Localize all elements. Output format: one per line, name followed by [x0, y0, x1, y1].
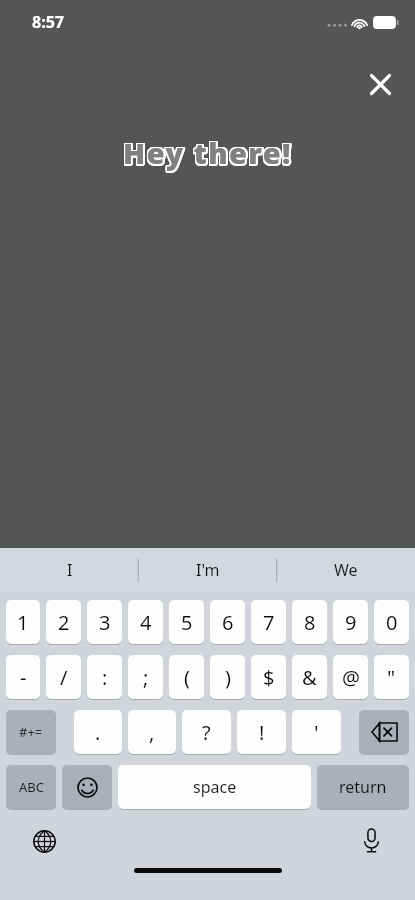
button[interactable]: Change keyboard: [26, 823, 62, 859]
button[interactable]: 0: [374, 600, 409, 644]
staticText: ): [225, 664, 231, 691]
button[interactable]: I'm: [139, 548, 277, 592]
staticText: ;: [143, 664, 149, 691]
button[interactable]: Close: [362, 66, 398, 102]
button[interactable]: ;: [128, 655, 163, 699]
button[interactable]: 1: [6, 600, 40, 644]
staticText: 7: [263, 609, 275, 636]
staticText: $: [263, 664, 275, 691]
button[interactable]: ": [374, 655, 409, 699]
button[interactable]: Emoji: [62, 765, 112, 809]
staticText: Hey there!: [123, 132, 292, 171]
staticText: 8: [304, 609, 316, 636]
staticText: :: [102, 664, 108, 691]
button[interactable]: @: [333, 655, 368, 699]
staticText: ,: [149, 719, 155, 746]
button[interactable]: Voice input: [353, 823, 389, 859]
staticText: Hey there!: [125, 132, 294, 171]
staticText: Hey there!: [122, 132, 291, 171]
staticText: Hey there!: [125, 134, 294, 173]
staticText: ?: [202, 719, 211, 746]
staticText: 3: [99, 609, 111, 636]
staticText: Hey there!: [124, 135, 293, 174]
button[interactable]: 9: [333, 600, 368, 644]
staticText: 0: [386, 609, 398, 636]
button[interactable]: I: [0, 548, 139, 592]
button[interactable]: 2: [46, 600, 81, 644]
staticText: !: [259, 719, 265, 746]
staticText: ": [387, 664, 396, 691]
staticText: 4: [140, 609, 152, 636]
button[interactable]: ABC: [6, 765, 56, 809]
staticText: space: [193, 776, 237, 798]
button[interactable]: ,: [128, 710, 176, 754]
staticText: #+=: [19, 723, 43, 741]
button[interactable]: &: [292, 655, 327, 699]
button[interactable]: !: [237, 710, 286, 754]
staticText: Hey there!: [124, 132, 293, 171]
staticText: Hey there!: [122, 132, 291, 171]
staticText: ': [314, 719, 319, 746]
staticText: 5: [181, 609, 193, 636]
staticText: Hey there!: [124, 134, 293, 173]
button[interactable]: 5: [169, 600, 204, 644]
staticText: Hey there!: [122, 133, 291, 172]
staticText: Hey there!: [122, 134, 291, 173]
button[interactable]: 3: [87, 600, 122, 644]
staticText: (: [184, 664, 190, 691]
staticText: /: [60, 664, 68, 691]
button[interactable]: 7: [251, 600, 286, 644]
staticText: I'm: [196, 559, 220, 581]
staticText: -: [20, 664, 27, 691]
staticText: Hey there!: [122, 133, 291, 172]
staticText: @: [342, 664, 360, 691]
staticText: &: [302, 664, 317, 691]
button[interactable]: /: [46, 655, 81, 699]
button[interactable]: #+=: [6, 710, 56, 754]
button[interactable]: -: [6, 655, 40, 699]
button[interactable]: return: [317, 765, 409, 809]
staticText: Hey there!: [123, 134, 292, 173]
staticText: 9: [345, 609, 357, 636]
button[interactable]: (: [169, 655, 204, 699]
button[interactable]: ': [292, 710, 341, 754]
staticText: Hey there!: [125, 133, 294, 172]
button[interactable]: Backspace: [359, 710, 409, 754]
staticText: 1: [17, 609, 29, 636]
staticText: Hey there!: [122, 134, 291, 173]
staticText: Hey there!: [122, 135, 291, 174]
button[interactable]: 8: [292, 600, 327, 644]
staticText: 2: [58, 609, 70, 636]
button[interactable]: ?: [182, 710, 231, 754]
button[interactable]: 6: [210, 600, 245, 644]
staticText: We: [334, 559, 358, 581]
staticText: ABC: [19, 778, 44, 796]
staticText: Hey there!: [123, 132, 292, 171]
staticText: return: [339, 776, 387, 798]
staticText: Hey there!: [123, 135, 292, 174]
button[interactable]: $: [251, 655, 286, 699]
button[interactable]: 4: [128, 600, 163, 644]
button[interactable]: ): [210, 655, 245, 699]
staticText: 8:57: [32, 11, 64, 33]
staticText: 6: [222, 609, 234, 636]
staticText: Hey there!: [124, 133, 293, 172]
button[interactable]: .: [74, 710, 122, 754]
staticText: I: [67, 559, 73, 581]
button[interactable]: :: [87, 655, 122, 699]
staticText: .: [95, 719, 101, 746]
staticText: Hey there!: [122, 132, 291, 171]
staticText: Hey there!: [124, 132, 293, 171]
button[interactable]: space: [118, 765, 311, 809]
staticText: Hey there!: [123, 133, 292, 172]
button[interactable]: We: [277, 548, 415, 592]
